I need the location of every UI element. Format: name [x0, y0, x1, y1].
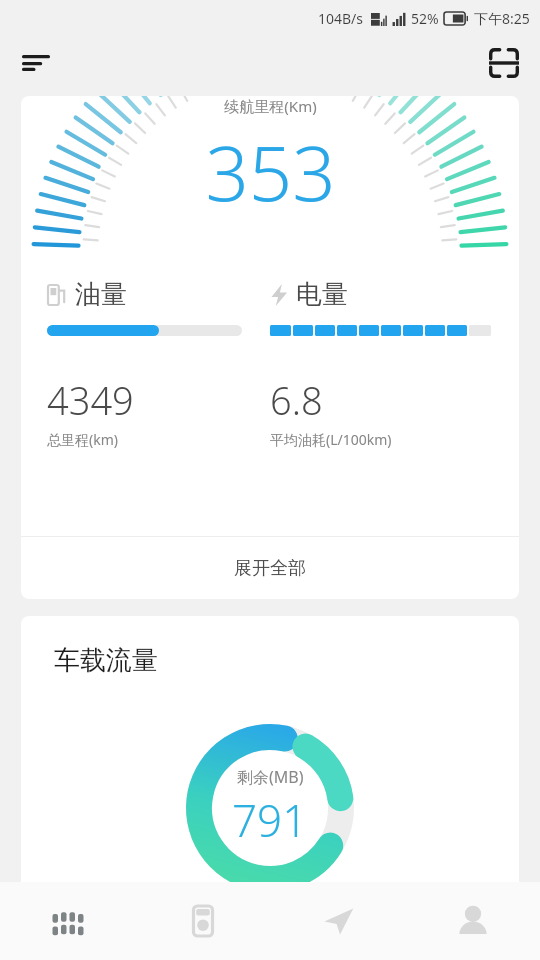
- staticText: 展开全部: [234, 557, 306, 580]
- staticText: 车载流量: [54, 644, 158, 677]
- staticText: 下午8:25: [474, 9, 530, 28]
- staticText: 791: [232, 790, 308, 850]
- staticText: 6.8: [270, 374, 323, 426]
- button[interactable]: Profile: [405, 882, 540, 960]
- button[interactable]: Menu: [12, 39, 60, 87]
- staticText: 续航里程(Km): [224, 96, 317, 116]
- staticText: 总里程(km): [47, 430, 118, 449]
- button[interactable]: Scan: [480, 39, 528, 87]
- staticText: 剩余(MB): [237, 766, 304, 788]
- staticText: 4349: [47, 374, 134, 426]
- staticText: 电量: [296, 278, 348, 311]
- staticText: 52%: [411, 9, 439, 28]
- staticText: 104B/s: [318, 9, 364, 28]
- staticText: 平均油耗(L/100km): [270, 430, 392, 449]
- button[interactable]: 展开全部: [21, 537, 519, 599]
- button[interactable]: Navigation: [270, 882, 405, 960]
- staticText: 油量: [75, 278, 127, 311]
- button[interactable]: Music: [135, 882, 270, 960]
- staticText: 353: [205, 120, 336, 224]
- button[interactable]: Car: [0, 882, 135, 960]
